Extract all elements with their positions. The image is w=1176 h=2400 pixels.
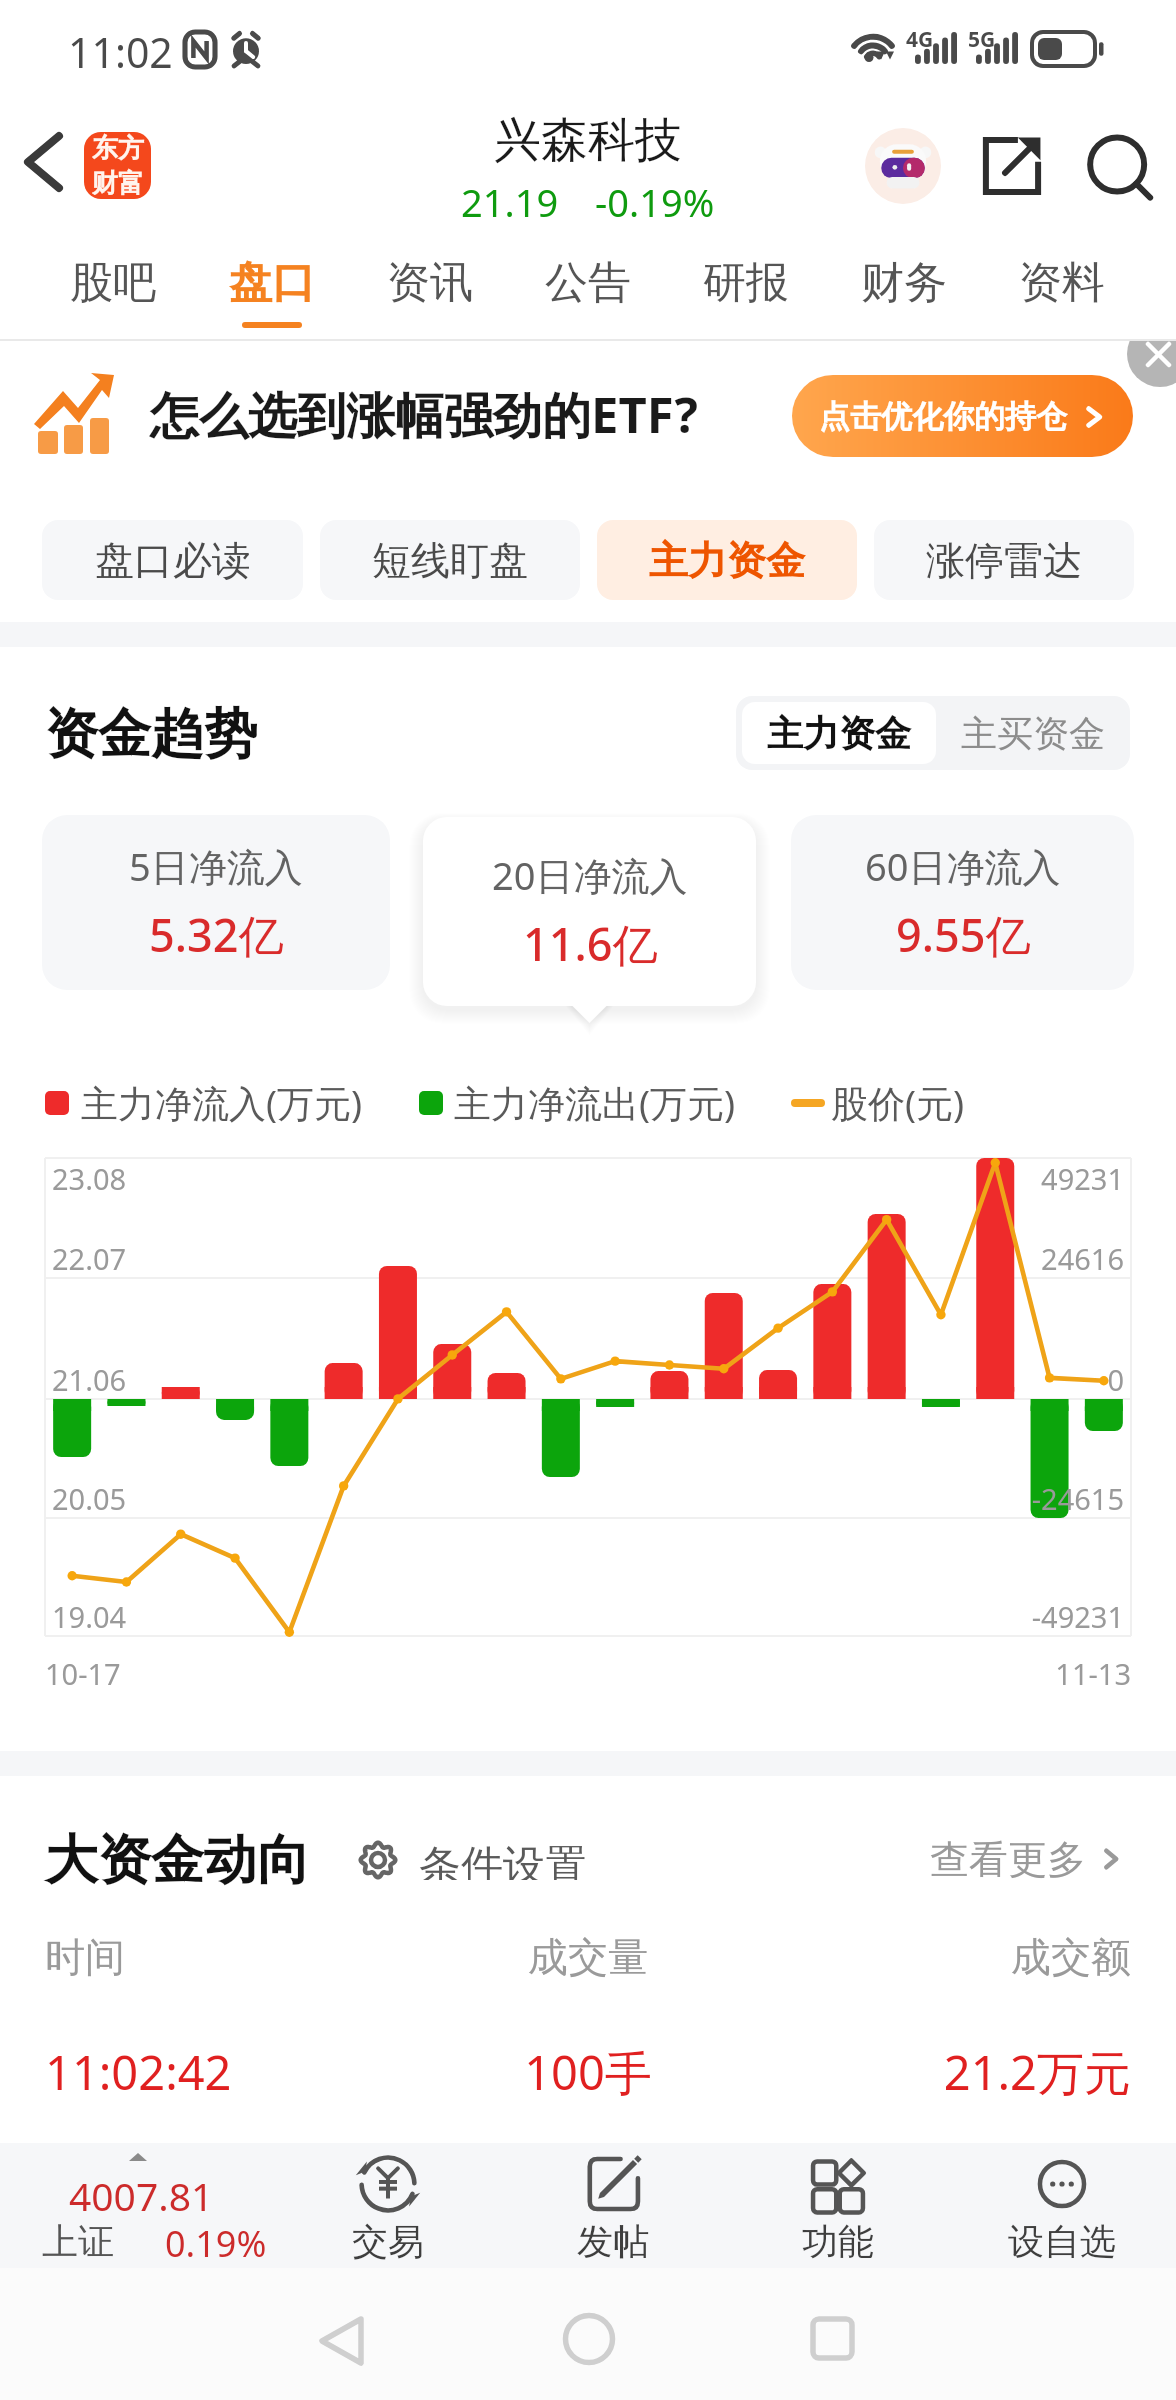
button[interactable]: 点击优化你的持仓	[792, 375, 1133, 457]
staticText: 查看更多	[930, 1835, 1086, 1884]
staticText: 11:02	[68, 24, 173, 80]
staticText: 盘口必读	[95, 536, 251, 585]
staticText: 5G	[968, 25, 996, 54]
staticText: 资金趋势	[45, 701, 257, 768]
button[interactable]: 11:02:42	[45, 2040, 1131, 2104]
staticText: 主力资金	[649, 536, 805, 585]
staticText: 19.04	[52, 1597, 127, 1636]
staticText: 11.6亿	[523, 913, 658, 974]
button[interactable]: 60日净流入	[791, 815, 1134, 990]
button[interactable]: Share	[975, 129, 1049, 203]
button[interactable]: 短线盯盘	[320, 520, 580, 600]
button[interactable]: Back	[292, 2291, 391, 2390]
button[interactable]: Assistant	[865, 128, 941, 204]
staticText: 21.2万元	[769, 2040, 1131, 2104]
staticText: 0.19%	[165, 2219, 267, 2268]
staticText: 9.55亿	[896, 904, 1031, 965]
staticText: 兴森科技	[494, 111, 682, 170]
button[interactable]: 资讯	[351, 235, 509, 341]
staticText: 49231	[824, 1159, 1124, 1198]
button[interactable]: 5日净流入	[42, 815, 390, 990]
staticText: 60日净流入	[865, 840, 1061, 892]
staticText: 设自选	[1008, 2219, 1116, 2264]
button[interactable]: 涨停雷达	[874, 520, 1134, 600]
staticText: 短线盯盘	[372, 536, 528, 585]
button[interactable]: 查看更多	[930, 1833, 1124, 1885]
staticText: 条件设置	[419, 1840, 587, 1880]
staticText: 成交量	[407, 1932, 769, 1982]
staticText: 涨停雷达	[926, 536, 1082, 585]
staticText: 23.08	[52, 1159, 127, 1198]
staticText: 4G	[906, 25, 934, 54]
staticText: 20日净流入	[492, 849, 688, 901]
button[interactable]: 股吧	[33, 235, 192, 341]
staticText: 主力资金	[767, 711, 911, 756]
button[interactable]: 主买资金	[936, 696, 1130, 770]
staticText: 资讯	[387, 256, 473, 310]
staticText: 4007.81	[69, 2169, 214, 2222]
staticText: 发帖	[577, 2219, 649, 2264]
button[interactable]: Recents	[783, 2289, 882, 2388]
staticText: 时间	[45, 1932, 407, 1982]
staticText: 21.19	[461, 176, 559, 228]
staticText: 主力净流出(万元)	[454, 1077, 736, 1128]
staticText: 财富	[92, 167, 144, 199]
button[interactable]: 财务	[825, 235, 983, 341]
staticText: 财务	[861, 256, 947, 310]
button[interactable]: 条件设置	[358, 1840, 587, 1880]
staticText: 上证	[42, 2219, 114, 2264]
staticText: 10-17	[45, 1654, 121, 1693]
staticText: 盘口	[229, 256, 315, 310]
button[interactable]: 盘口必读	[42, 520, 303, 600]
button[interactable]: Home	[539, 2289, 638, 2388]
button[interactable]: 设自选	[962, 2143, 1162, 2268]
button[interactable]: 东方	[84, 132, 151, 199]
button[interactable]: Search	[1077, 128, 1153, 204]
button[interactable]: 盘口	[192, 235, 351, 341]
staticText: 东方	[92, 132, 144, 165]
staticText: 成交额	[769, 1932, 1131, 1982]
staticText: 大资金动向	[45, 1827, 310, 1894]
button[interactable]: 交易	[288, 2143, 488, 2268]
staticText: -24615	[824, 1479, 1124, 1518]
button[interactable]: 主力资金	[597, 520, 857, 600]
staticText: 20.05	[52, 1479, 127, 1518]
staticText: 5日净流入	[129, 840, 303, 892]
staticText: 22.07	[52, 1239, 127, 1278]
staticText: -49231	[824, 1597, 1124, 1636]
button[interactable]: 功能	[738, 2143, 938, 2268]
staticText: 5.32亿	[149, 904, 284, 965]
staticText: 怎么选到涨幅强劲的ETF?	[150, 381, 698, 448]
staticText: 主买资金	[961, 711, 1105, 756]
staticText: 11:02:42	[45, 2040, 407, 2104]
button[interactable]: 主力资金	[742, 702, 936, 764]
staticText: 0	[824, 1360, 1124, 1399]
button[interactable]: 研报	[667, 235, 825, 341]
button[interactable]: Close	[1127, 341, 1176, 387]
button[interactable]: 公告	[509, 235, 667, 341]
button[interactable]: 20日净流入	[423, 817, 756, 1006]
staticText: 交易	[352, 2219, 424, 2264]
staticText: 点击优化你的持仓	[819, 397, 1067, 436]
button[interactable]: 4007.81	[0, 2143, 300, 2268]
staticText: 主力净流入(万元)	[81, 1077, 363, 1128]
staticText: -0.19%	[595, 176, 715, 228]
staticText: 功能	[802, 2219, 874, 2264]
staticText: 24616	[824, 1239, 1124, 1278]
button[interactable]: 发帖	[513, 2143, 713, 2268]
staticText: 21.06	[52, 1360, 127, 1399]
staticText: 股价(元)	[831, 1077, 965, 1128]
button[interactable]: 资料	[983, 235, 1141, 341]
button[interactable]: Back	[18, 124, 70, 176]
staticText: 资料	[1019, 256, 1105, 310]
staticText: 公告	[545, 256, 631, 310]
staticText: 股吧	[70, 256, 156, 310]
staticText: 研报	[703, 256, 789, 310]
staticText: 11-13	[831, 1654, 1131, 1693]
staticText: 100手	[407, 2040, 769, 2104]
